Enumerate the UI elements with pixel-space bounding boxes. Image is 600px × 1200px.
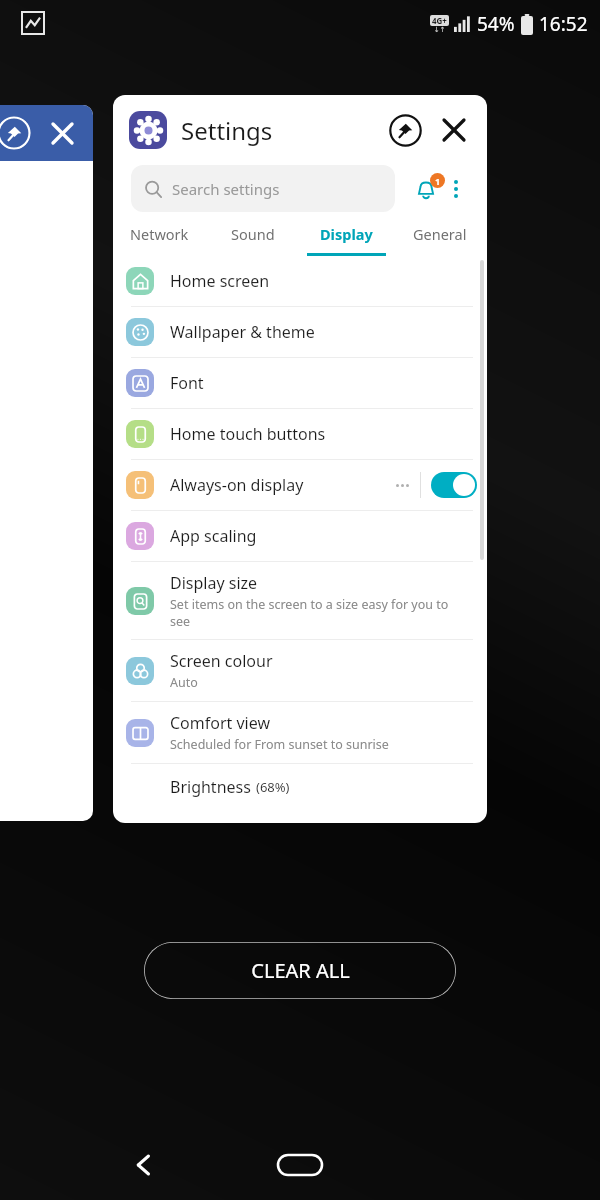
staticText: Auto [170, 674, 198, 691]
button[interactable]: More options [443, 176, 469, 202]
button[interactable]: Notifications [409, 172, 443, 206]
button[interactable]: Search settings [131, 165, 395, 212]
staticText: Search settings [172, 179, 280, 199]
button[interactable]: App scaling [113, 511, 487, 561]
button[interactable]: Home [276, 1150, 324, 1180]
button[interactable]: Network [113, 212, 206, 256]
staticText: CLEAR ALL [251, 957, 350, 984]
button[interactable]: Display size [113, 562, 487, 639]
staticText: App scaling [170, 525, 257, 547]
button[interactable]: Close [45, 116, 79, 150]
button[interactable]: Pin window [387, 112, 423, 148]
staticText: Scheduled for From sunset to sunrise [170, 736, 389, 753]
staticText: ↓↑ [434, 26, 446, 34]
staticText: Home screen [170, 270, 270, 292]
button[interactable]: Comfort view [113, 702, 487, 763]
staticText: (68%) [256, 778, 290, 796]
staticText: Brightness [170, 776, 251, 798]
button[interactable]: Home screen [113, 256, 487, 306]
staticText: Display size [170, 572, 258, 594]
staticText: Sound [231, 224, 275, 244]
button[interactable]: Wallpaper & theme [113, 307, 487, 357]
staticText: Set items on the screen to a size easy f… [170, 596, 449, 629]
button[interactable] [431, 472, 477, 498]
button[interactable]: Home touch buttons [113, 409, 487, 459]
staticText: 54% [477, 11, 515, 37]
staticText: Always-on display [170, 474, 304, 496]
staticText: Screen colour [170, 650, 273, 672]
button[interactable]: Font [113, 358, 487, 408]
button[interactable]: Screen colour [113, 640, 487, 701]
staticText: Network [130, 224, 189, 244]
staticText: Settings [181, 114, 273, 147]
staticText: Wallpaper & theme [170, 321, 315, 343]
staticText: 16:52 [539, 11, 588, 37]
button[interactable]: General [393, 212, 487, 256]
button[interactable]: Always-on display [113, 460, 487, 510]
button[interactable]: Brightness [113, 764, 487, 810]
staticText: Display [320, 224, 373, 244]
staticText: General [413, 224, 467, 244]
staticText: 4G+ [432, 15, 447, 26]
button[interactable]: Sound [206, 212, 299, 256]
staticText: Comfort view [170, 712, 271, 734]
button[interactable]: Back [122, 1143, 166, 1187]
button[interactable]: Close [437, 113, 471, 147]
button[interactable]: Pin [0, 116, 31, 150]
staticText: 1 [435, 175, 441, 187]
staticText: Home touch buttons [170, 423, 326, 445]
staticText: Font [170, 372, 204, 394]
button[interactable]: CLEAR ALL [144, 942, 456, 999]
button[interactable]: Display [299, 212, 393, 256]
